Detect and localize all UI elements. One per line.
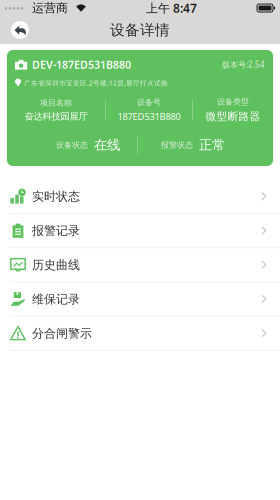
button[interactable]: 报警记录 xyxy=(0,214,280,248)
staticText: 项目名称 xyxy=(40,98,72,108)
staticText: 分合闸警示 xyxy=(32,326,92,341)
button[interactable]: 历史曲线 xyxy=(0,248,280,283)
staticText: 上午 8:47 xyxy=(146,0,197,16)
staticText: 报警状态 xyxy=(161,140,193,150)
staticText: 广东省深圳市宝安区,2号楼,12层,展厅打火试验 xyxy=(24,79,168,87)
button[interactable]: 维保记录 xyxy=(0,283,280,317)
staticText: 版本号:2.54 xyxy=(222,59,265,70)
staticText: 设备状态 xyxy=(56,140,88,150)
button[interactable]: 返回 xyxy=(0,16,40,44)
staticText: 运营商 xyxy=(24,1,76,15)
staticText: 187ED531B880 xyxy=(117,110,180,123)
staticText: ••••• xyxy=(4,2,24,14)
staticText: 正常 xyxy=(199,137,225,153)
button[interactable]: 实时状态 xyxy=(0,180,280,214)
staticText: 实时状态 xyxy=(32,189,80,204)
staticText: DEV-187ED531B880 xyxy=(32,57,131,72)
staticText: 维保记录 xyxy=(32,292,80,306)
staticText: 微型断路器 xyxy=(205,110,260,123)
staticText: 奋达科技园展厅 xyxy=(24,111,87,122)
staticText: 报警记录 xyxy=(32,223,80,238)
button[interactable]: 分合闸警示 xyxy=(0,317,280,351)
staticText: 历史曲线 xyxy=(32,258,80,272)
staticText: 在线 xyxy=(94,137,120,153)
staticText: 设备详情 xyxy=(110,21,170,39)
staticText: 设备类型 xyxy=(217,97,249,107)
staticText: 设备号 xyxy=(137,97,161,107)
